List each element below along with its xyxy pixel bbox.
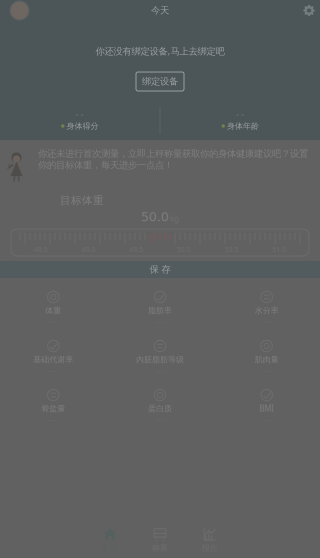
staticText: 50.5: [224, 245, 238, 254]
staticText: 绑定设备: [142, 76, 178, 87]
staticText: 保 存: [149, 264, 170, 275]
button[interactable]: Settings: [303, 4, 315, 16]
staticText: 49.5: [129, 245, 143, 254]
staticText: - -: [76, 109, 84, 120]
staticText: 脂肪率: [148, 306, 172, 315]
staticText: 50.0: [141, 207, 169, 225]
staticText: 基础代谢率: [33, 355, 73, 364]
staticText: 今天: [151, 5, 169, 16]
staticText: 体重: [45, 306, 61, 315]
staticText: 蛋白质: [148, 404, 172, 413]
staticText: 48.5: [34, 245, 48, 254]
button[interactable]: 保 存: [0, 261, 320, 278]
staticText: 内脏脂肪等级: [136, 355, 184, 364]
staticText: 肌肉量: [255, 355, 279, 364]
staticText: 身体得分: [66, 121, 98, 131]
staticText: 水分率: [255, 306, 279, 315]
staticText: 身体年龄: [227, 121, 259, 131]
staticText: 你还未进行首次测量，立即上秤称量获取你的身体健康建议吧？设置你的目标体重，每天进…: [38, 148, 308, 171]
staticText: kg: [170, 213, 179, 224]
button[interactable]: 绑定设备: [136, 72, 184, 91]
staticText: BMI: [259, 403, 274, 414]
staticText: 你还没有绑定设备,马上去绑定吧: [95, 45, 224, 57]
staticText: - -: [236, 109, 244, 120]
staticText: 目标体重: [60, 194, 104, 207]
staticText: 骨盐量: [41, 404, 65, 413]
button[interactable]: Profile: [10, 1, 29, 20]
staticText: 49.0: [81, 245, 95, 254]
